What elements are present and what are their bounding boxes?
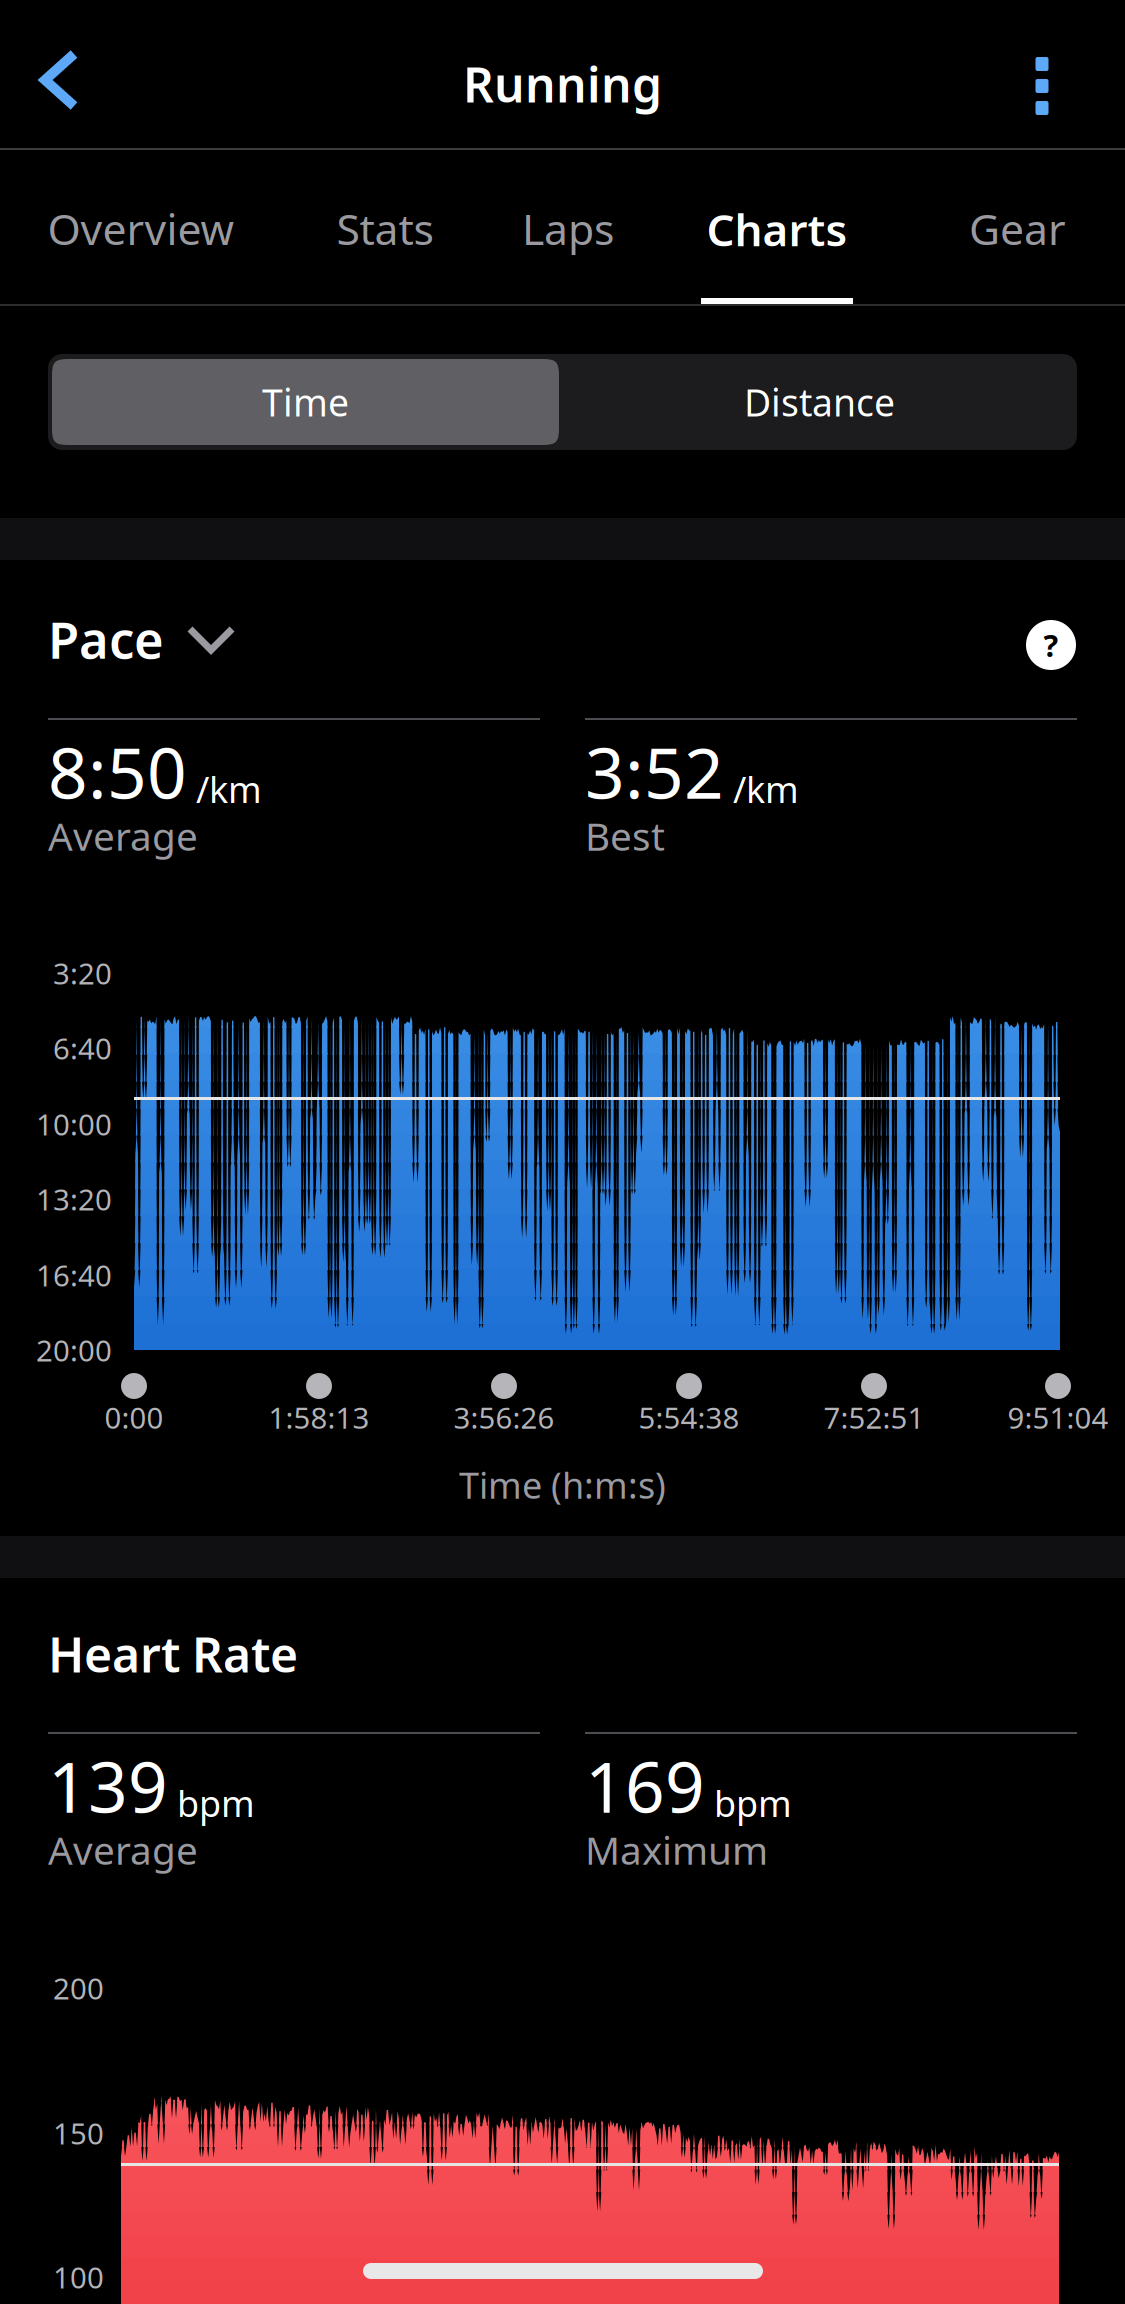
button[interactable]: Time <box>52 359 559 445</box>
button[interactable]: Pace <box>48 606 468 672</box>
staticText: Distance <box>744 377 895 427</box>
staticText: ? <box>1043 625 1058 665</box>
staticText: 100 <box>53 2257 104 2296</box>
staticText: Pace <box>48 605 164 673</box>
staticText: 6:40 <box>53 1028 112 1067</box>
button[interactable]: More options <box>1004 49 1080 123</box>
button[interactable]: Help <box>1026 620 1076 670</box>
staticText: Charts <box>706 200 847 258</box>
staticText: 3:20 <box>53 953 112 992</box>
staticText: Best <box>585 810 665 861</box>
staticText: 20:00 <box>36 1330 112 1369</box>
staticText: bpm <box>168 1779 255 1827</box>
staticText: 7:52:51 <box>823 1398 924 1437</box>
staticText: /km <box>724 765 799 813</box>
button[interactable]: Stats <box>300 152 470 306</box>
staticText: Time (h:m:s) <box>459 1461 666 1509</box>
staticText: 3:52 <box>585 726 724 818</box>
staticText: 150 <box>53 2113 104 2152</box>
staticText: 16:40 <box>36 1255 112 1294</box>
staticText: 5:54:38 <box>638 1398 739 1437</box>
button[interactable]: Laps <box>492 152 644 306</box>
staticText: 3:56:26 <box>453 1398 554 1437</box>
staticText: 139 <box>48 1740 168 1832</box>
staticText: 13:20 <box>36 1179 112 1218</box>
staticText: 8:50 <box>48 726 187 818</box>
staticText: Time <box>262 377 349 427</box>
button[interactable]: Gear <box>940 152 1095 306</box>
staticText: Laps <box>522 200 614 257</box>
staticText: Running <box>463 52 662 116</box>
button[interactable]: Back <box>26 46 118 118</box>
staticText: /km <box>187 765 262 813</box>
staticText: Average <box>48 1824 198 1875</box>
staticText: Gear <box>969 200 1066 257</box>
staticText: Heart Rate <box>48 1622 298 1686</box>
staticText: Average <box>48 810 198 861</box>
staticText: Stats <box>336 200 433 257</box>
staticText: 0:00 <box>104 1398 163 1437</box>
staticText: 10:00 <box>36 1104 112 1143</box>
button[interactable]: Distance <box>566 359 1073 445</box>
button[interactable]: Overview <box>23 152 259 306</box>
staticText: 169 <box>585 1740 705 1832</box>
staticText: 1:58:13 <box>268 1398 369 1437</box>
staticText: Overview <box>47 200 234 257</box>
staticText: 200 <box>53 1968 104 2007</box>
staticText: Maximum <box>585 1824 768 1875</box>
staticText: bpm <box>705 1779 792 1827</box>
button[interactable]: Charts <box>680 152 874 306</box>
staticText: 9:51:04 <box>1007 1398 1108 1437</box>
